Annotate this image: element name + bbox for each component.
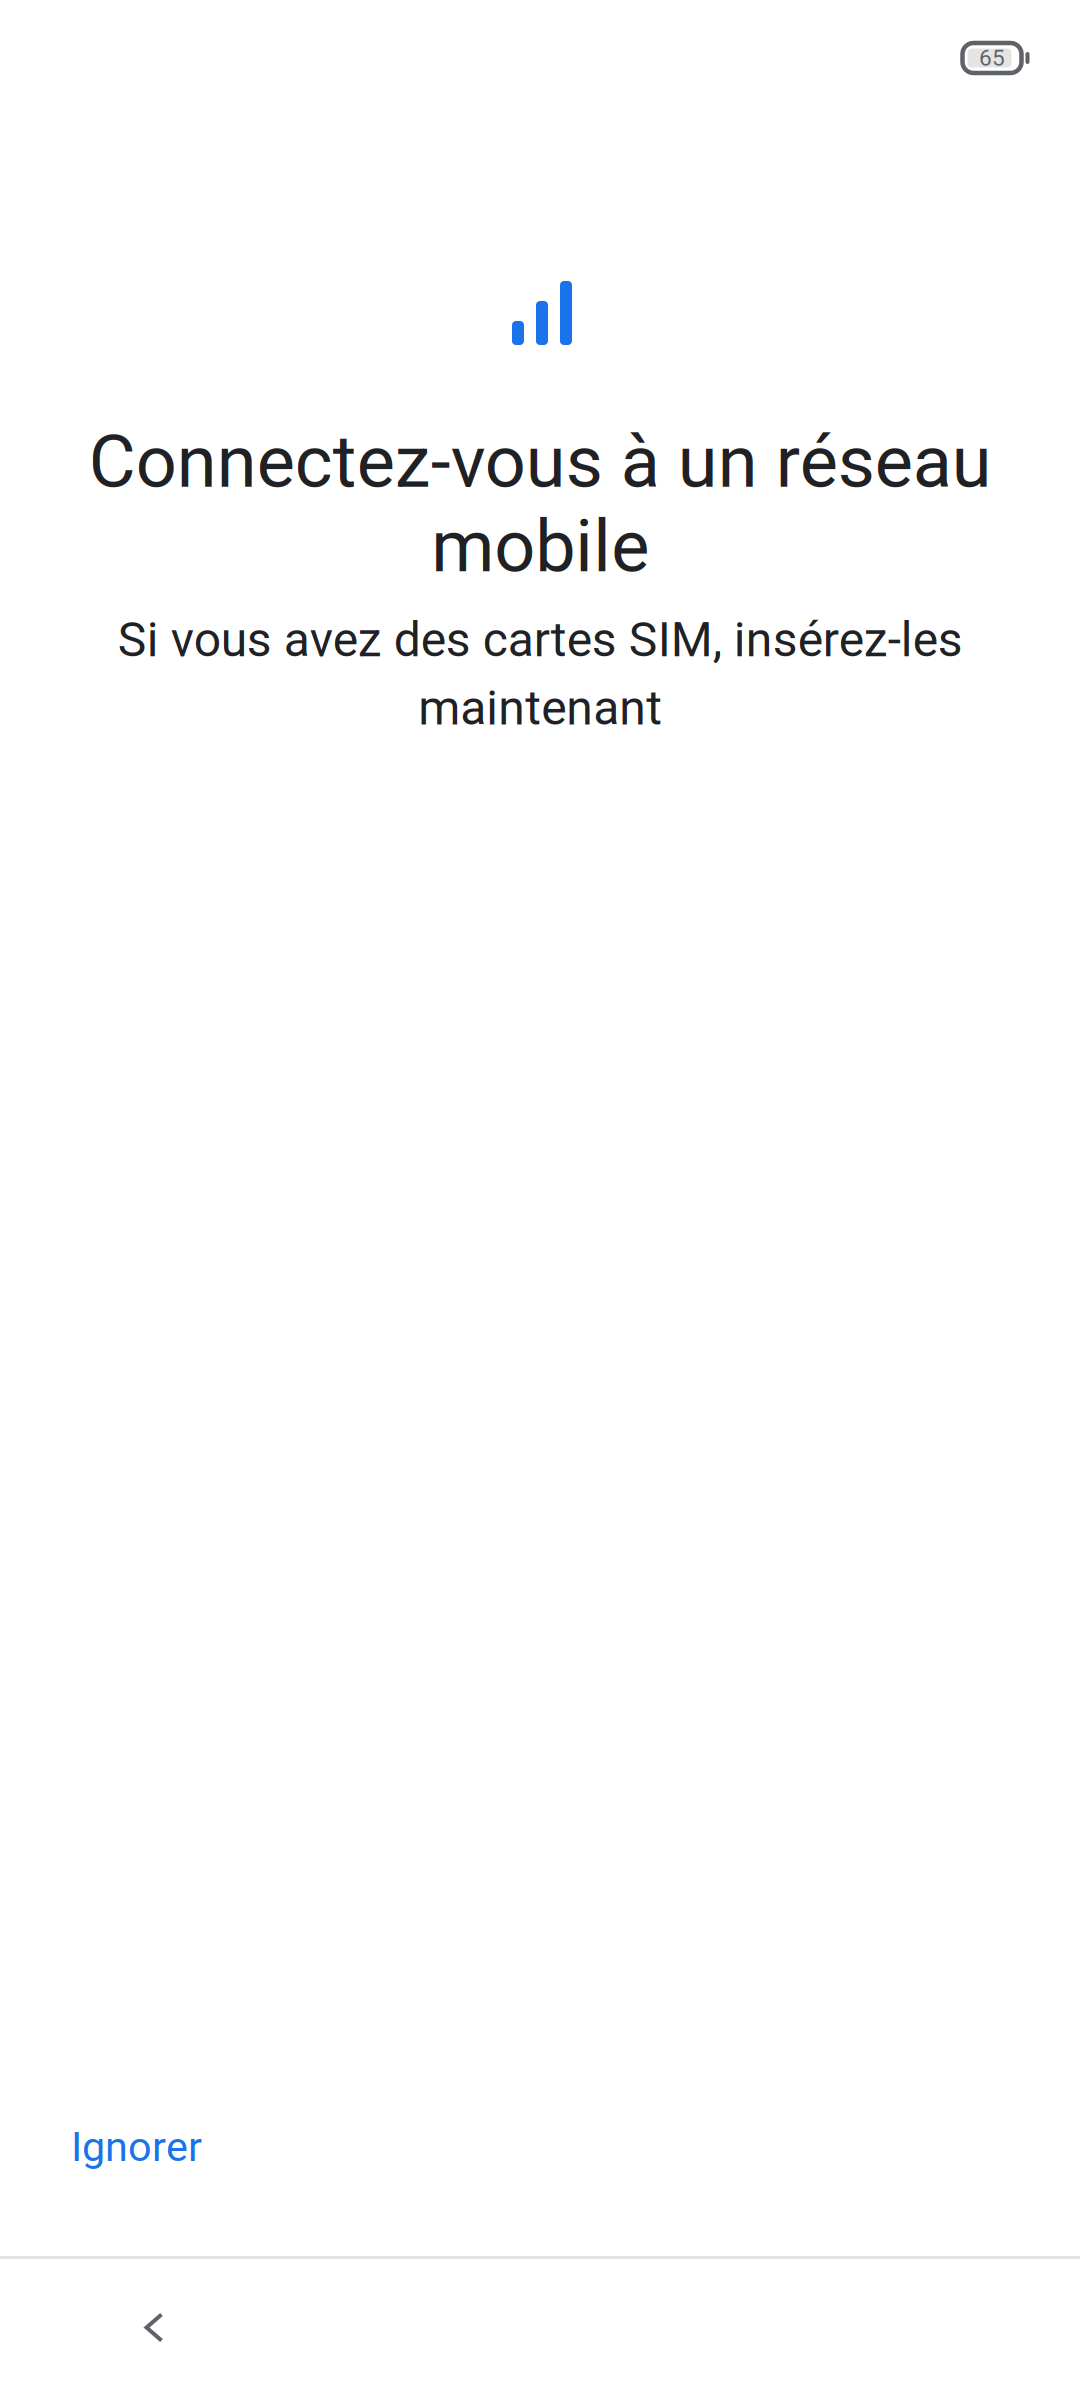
button[interactable]: Back <box>94 2259 214 2400</box>
staticText: Si vous avez des cartes SIM, insérez-les… <box>117 612 962 736</box>
staticText: 65 <box>979 45 1005 71</box>
staticText: Connectez-vous à un réseau mobile <box>88 420 991 589</box>
staticText: Ignorer <box>71 2123 202 2171</box>
button[interactable]: Ignorer <box>47 2103 226 2191</box>
